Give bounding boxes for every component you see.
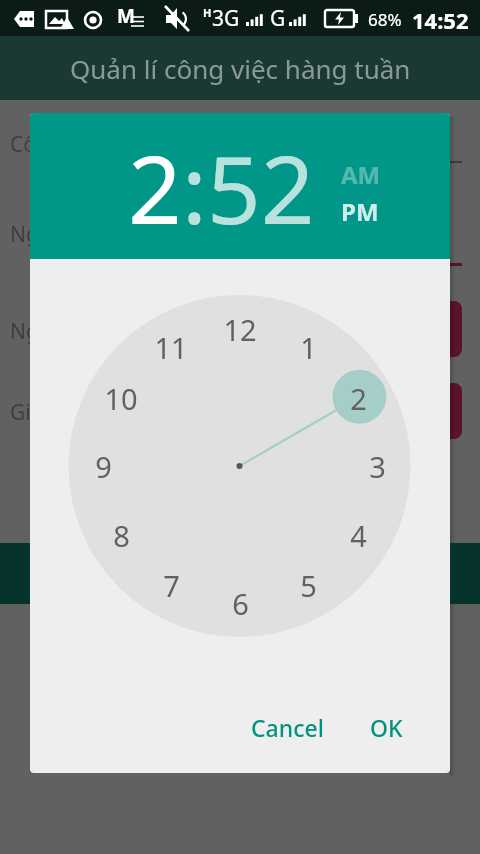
- staticText: 14:52: [412, 5, 469, 35]
- button[interactable]: Cancel: [242, 699, 332, 755]
- staticText: 2: [350, 379, 367, 418]
- staticText: Công việc: [10, 130, 106, 159]
- staticText: Quản lí công việc hàng tuần: [70, 51, 411, 86]
- staticText: G: [270, 4, 286, 33]
- staticText: 3: [369, 447, 386, 486]
- staticText: OK: [370, 712, 403, 743]
- button[interactable]: AM: [341, 158, 381, 191]
- staticText: Giờ: [10, 398, 44, 427]
- staticText: 9: [95, 447, 112, 486]
- staticText: Ngày: [10, 317, 62, 346]
- button[interactable]: [258, 301, 462, 357]
- staticText: 4: [350, 516, 367, 555]
- staticText: 12: [223, 310, 257, 349]
- staticText: 3G: [212, 4, 240, 33]
- staticText: 1: [300, 328, 317, 367]
- staticText: H: [203, 5, 212, 20]
- staticText: Ngày: [10, 220, 62, 249]
- staticText: 68%: [368, 8, 402, 31]
- staticText: 5: [300, 566, 317, 605]
- button[interactable]: [0, 543, 480, 604]
- button[interactable]: OK: [352, 699, 420, 755]
- staticText: Cancel: [251, 712, 324, 743]
- staticText: 11: [154, 328, 188, 367]
- staticText: 7: [163, 566, 180, 605]
- button[interactable]: [258, 383, 462, 439]
- staticText: 6: [232, 584, 249, 623]
- staticText: 8: [113, 516, 130, 555]
- staticText: M: [117, 3, 135, 29]
- button[interactable]: PM: [341, 195, 379, 228]
- staticText: 10: [104, 379, 138, 418]
- button[interactable]: 2:52: [128, 124, 315, 252]
